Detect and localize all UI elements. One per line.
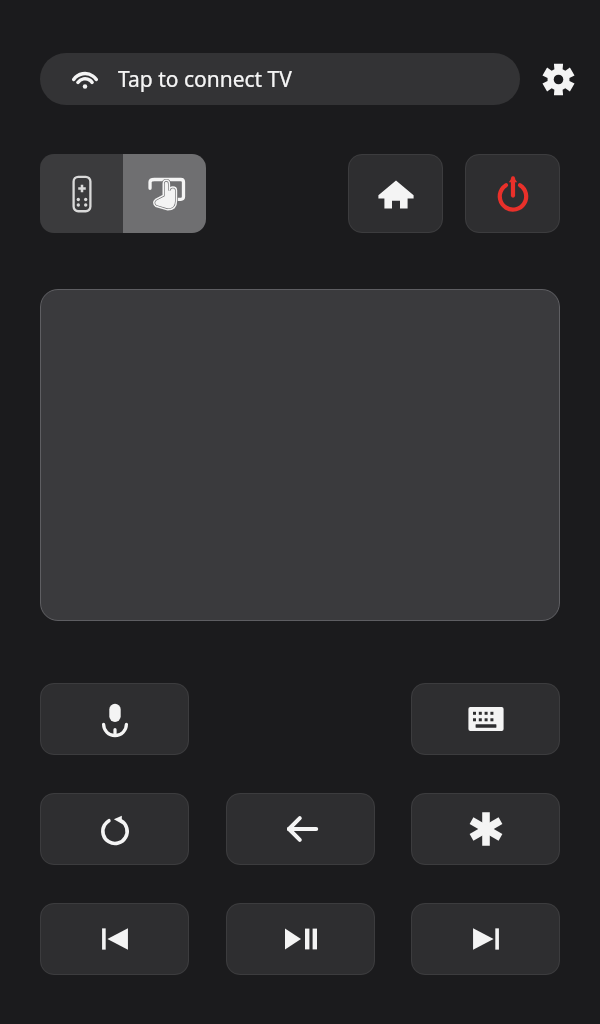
button[interactable]: Previous: [40, 903, 189, 975]
button[interactable]: Touchpad: [40, 289, 560, 621]
staticText: Tap to connect TV: [118, 65, 292, 94]
button[interactable]: Next: [411, 903, 560, 975]
button[interactable]: Tap to connect TV: [40, 53, 520, 105]
button[interactable]: Back: [226, 793, 375, 865]
button[interactable]: Play or pause: [226, 903, 375, 975]
button[interactable]: Keyboard: [411, 683, 560, 755]
button[interactable]: Power: [465, 154, 560, 233]
button[interactable]: D-pad remote mode: [40, 154, 123, 233]
button[interactable]: Voice search: [40, 683, 189, 755]
button[interactable]: Refresh: [40, 793, 189, 865]
button[interactable]: Touchpad mode: [123, 154, 206, 233]
button[interactable]: Home: [348, 154, 443, 233]
button[interactable]: Settings: [530, 51, 586, 107]
button[interactable]: Star: [411, 793, 560, 865]
